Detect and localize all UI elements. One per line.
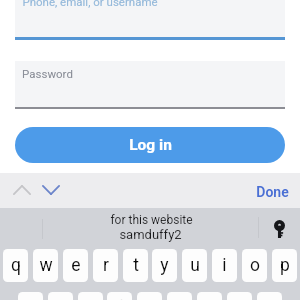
staticText: u: [190, 255, 200, 276]
staticText: f: [116, 298, 123, 300]
button[interactable]: a: [18, 292, 43, 300]
button[interactable]: i: [212, 249, 237, 282]
button[interactable]: Previous field: [9, 177, 35, 203]
button[interactable]: s: [48, 292, 73, 300]
button[interactable]: Phone, email, or username: [15, 0, 285, 38]
staticText: Phone, email, or username: [22, 0, 158, 8]
button[interactable]: o: [242, 249, 267, 282]
staticText: w: [39, 255, 53, 276]
button[interactable]: g: [137, 292, 162, 300]
staticText: t: [133, 255, 139, 276]
staticText: Log in: [129, 136, 172, 154]
staticText: Password: [22, 67, 73, 80]
staticText: q: [11, 255, 21, 276]
button[interactable]: u: [182, 249, 207, 282]
staticText: for this website: [110, 213, 193, 227]
button[interactable]: Done: [251, 180, 291, 204]
button[interactable]: l: [257, 292, 282, 300]
button[interactable]: d: [78, 292, 103, 300]
staticText: r: [103, 255, 109, 276]
button[interactable]: Passwords: [269, 218, 290, 239]
button[interactable]: f: [107, 292, 132, 300]
button[interactable]: r: [93, 249, 118, 282]
button[interactable]: Next field: [38, 177, 64, 203]
button[interactable]: Password: [15, 61, 285, 108]
button[interactable]: q: [3, 249, 28, 282]
button[interactable]: Log in: [15, 127, 285, 163]
staticText: samduffy2: [119, 227, 182, 242]
button[interactable]: j: [197, 292, 222, 300]
button[interactable]: t: [123, 249, 148, 282]
staticText: e: [71, 255, 81, 276]
button[interactable]: k: [227, 292, 252, 300]
button[interactable]: for this website: [55, 208, 245, 246]
button[interactable]: e: [63, 249, 88, 282]
button[interactable]: h: [167, 292, 192, 300]
staticText: i: [222, 255, 227, 276]
staticText: Done: [256, 184, 289, 200]
button[interactable]: y: [152, 249, 177, 282]
button[interactable]: w: [33, 249, 58, 282]
button[interactable]: p: [272, 249, 297, 282]
staticText: p: [280, 255, 290, 276]
staticText: o: [250, 255, 260, 276]
staticText: y: [160, 255, 169, 276]
